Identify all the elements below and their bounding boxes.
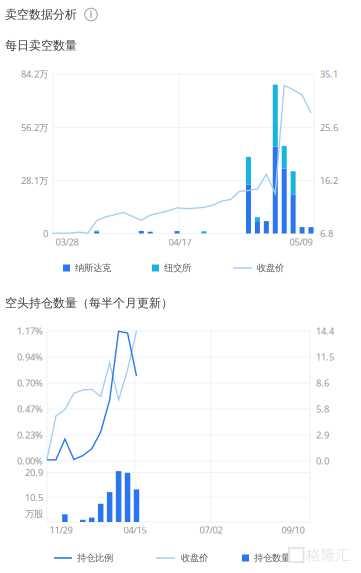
staticText: 纽交所 xyxy=(164,262,191,274)
staticText: 收盘价 xyxy=(257,262,284,274)
staticText: 卖空数据分析 xyxy=(5,7,77,22)
staticText: 35.1 xyxy=(320,68,338,80)
staticText: 56.2万 xyxy=(21,121,48,134)
button[interactable]: 收盘价 xyxy=(0,0,361,573)
staticText: 84.2万 xyxy=(21,68,48,80)
staticText: 1.17% xyxy=(17,325,43,337)
staticText: 05/09 xyxy=(289,236,312,248)
staticText: 09/10 xyxy=(281,524,304,536)
button[interactable]: 持仓数量 xyxy=(0,0,361,573)
button[interactable]: 纳斯达克 xyxy=(0,0,361,573)
staticText: 6.8 xyxy=(320,227,333,240)
staticText: 03/28 xyxy=(55,236,78,248)
staticText: 25.6 xyxy=(320,121,338,134)
button[interactable]: 收盘价 xyxy=(0,0,361,573)
staticText: 收盘价 xyxy=(181,552,208,564)
staticText: 16.2 xyxy=(320,174,338,187)
staticText: 纳斯达克 xyxy=(75,262,111,274)
staticText: 0.0 xyxy=(316,455,329,467)
staticText: 8.6 xyxy=(316,377,329,389)
staticText: 持仓比例 xyxy=(77,552,113,564)
staticText: 0.23% xyxy=(17,429,43,441)
staticText: 04/15 xyxy=(123,524,146,536)
staticText: 28.1万 xyxy=(21,174,48,187)
staticText: 万股 xyxy=(25,508,43,520)
staticText: 0.47% xyxy=(17,403,43,415)
staticText: 0.94% xyxy=(17,351,43,363)
staticText: 5.8 xyxy=(316,403,329,415)
staticText: 0.00% xyxy=(17,455,43,467)
staticText: 持仓数量 xyxy=(254,552,290,564)
staticText: 11.5 xyxy=(316,351,334,363)
staticText: 2.9 xyxy=(316,429,329,441)
staticText: 11/29 xyxy=(49,524,72,536)
staticText: 10.5 xyxy=(25,491,43,503)
staticText: 空头持仓数量（每半个月更新） xyxy=(5,296,173,310)
button[interactable]: 卖空数据分析说明 xyxy=(0,0,361,573)
button[interactable]: 纽交所 xyxy=(0,0,361,573)
staticText: 14.4 xyxy=(316,325,334,337)
staticText: 20.9 xyxy=(25,466,43,479)
staticText: 每日卖空数量 xyxy=(5,38,77,53)
staticText: 04/17 xyxy=(168,236,191,248)
staticText: 07/02 xyxy=(199,524,222,536)
staticText: 格隆汇 xyxy=(306,546,351,564)
staticText: 0.70% xyxy=(17,377,43,389)
staticText: 0 xyxy=(43,227,48,240)
button[interactable]: 持仓比例 xyxy=(0,0,361,573)
